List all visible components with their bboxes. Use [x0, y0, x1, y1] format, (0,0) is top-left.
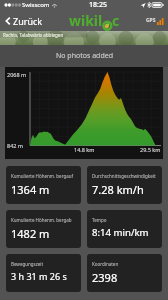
staticText: 7.28 km/h: [92, 182, 144, 197]
staticText: wikil: [69, 11, 103, 30]
staticText: Durchschnittsgeschwindigkeit: [92, 173, 156, 179]
button[interactable]: Durchschnittsgeschwindigkeit: [87, 166, 162, 204]
staticText: 8:14 min/km: [92, 226, 149, 239]
staticText: GPS: [146, 17, 156, 24]
staticText: 29.5 km: [140, 146, 161, 153]
staticText: Zurück: [13, 15, 43, 27]
button[interactable]: Wikiloc: [69, 11, 120, 30]
staticText: Rechts, Talabwärts abbiegen: [3, 32, 64, 38]
button[interactable]: Kumulierte Höhenm. bergauf: [6, 166, 81, 204]
staticText: Tempo: [92, 217, 107, 223]
staticText: Swisscom: [22, 1, 50, 9]
staticText: Bewegungszeit: [11, 261, 44, 267]
button[interactable]: No photos added: [0, 45, 168, 67]
button[interactable]: Kumulierte Höhenm. bergab: [6, 210, 81, 248]
button[interactable]: Koordinaten: [87, 254, 162, 292]
staticText: 1364 m: [11, 182, 50, 197]
staticText: No photos added: [56, 51, 113, 61]
staticText: 2068 m: [7, 71, 27, 78]
button[interactable]: Bewegungszeit: [6, 254, 81, 292]
staticText: Kumulierte Höhenm. bergab: [11, 217, 72, 223]
staticText: 842 m: [7, 142, 24, 149]
button[interactable]: GPS signal: [146, 17, 164, 25]
button[interactable]: Tempo: [87, 210, 162, 248]
staticText: Kumulierte Höhenm. bergauf: [11, 173, 74, 179]
staticText: 14.8 km: [74, 146, 95, 153]
staticText: 2398: [92, 270, 118, 285]
staticText: c: [112, 11, 120, 30]
staticText: 3 h 31 m 26 s: [11, 270, 67, 282]
staticText: Koordinaten: [92, 261, 119, 267]
staticText: 1482 m: [11, 226, 50, 241]
button[interactable]: Zurück: [4, 12, 44, 30]
button[interactable]: Track photo: [0, 31, 168, 45]
staticText: 18:25: [89, 0, 107, 10]
